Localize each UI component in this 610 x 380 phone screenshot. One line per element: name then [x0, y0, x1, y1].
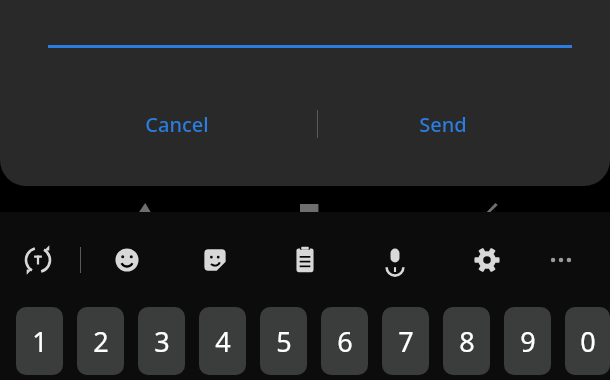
- button[interactable]: Cancel: [96, 98, 258, 150]
- button[interactable]: 0: [565, 307, 610, 375]
- button[interactable]: 8: [443, 307, 490, 375]
- button[interactable]: 7: [382, 307, 429, 375]
- staticText: Cancel: [145, 111, 209, 138]
- button[interactable]: Stickers: [191, 236, 239, 284]
- staticText: 6: [337, 323, 353, 360]
- button[interactable]: Send: [362, 98, 524, 150]
- staticText: 5: [276, 323, 292, 360]
- staticText: 3: [154, 323, 170, 360]
- button[interactable]: Clipboard: [281, 236, 329, 284]
- button[interactable]: 2: [77, 307, 124, 375]
- button[interactable]: 4: [199, 307, 246, 375]
- staticText: Send: [419, 111, 467, 138]
- button[interactable]: 3: [138, 307, 185, 375]
- button[interactable]: Emoji: [103, 236, 151, 284]
- staticText: 7: [398, 323, 414, 360]
- button[interactable]: 1: [16, 307, 63, 375]
- button[interactable]: Voice input: [371, 236, 419, 284]
- staticText: 0: [580, 323, 596, 360]
- staticText: 4: [215, 323, 231, 360]
- button[interactable]: 9: [504, 307, 551, 375]
- staticText: 8: [459, 323, 475, 360]
- button[interactable]: Settings: [463, 236, 511, 284]
- staticText: 2: [93, 323, 109, 360]
- button[interactable]: 5: [260, 307, 307, 375]
- button[interactable]: 6: [321, 307, 368, 375]
- staticText: 1: [32, 323, 48, 360]
- button[interactable]: Toggle text translation: [14, 236, 62, 284]
- button[interactable]: More options: [537, 236, 585, 284]
- staticText: 9: [520, 323, 536, 360]
